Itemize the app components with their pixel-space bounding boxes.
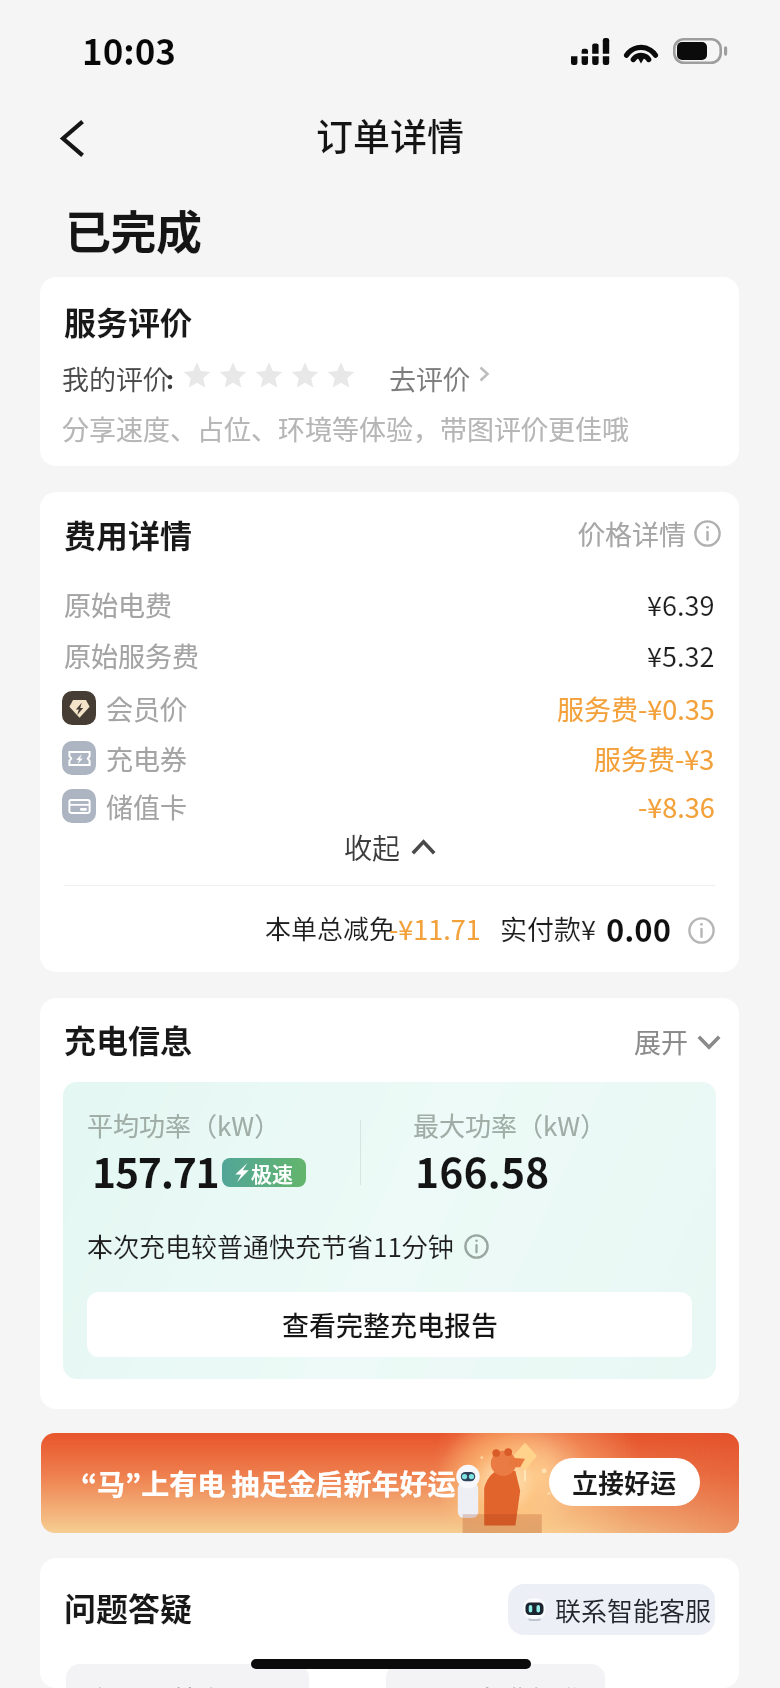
staticText: 0.00 (606, 906, 671, 951)
staticText: 充电券 (106, 739, 187, 778)
staticText: 服务费-¥3 (594, 739, 715, 778)
staticText: 分享速度、占位、环境等体验，带图评价更佳哦 (62, 409, 629, 448)
staticText: 去评价 (389, 359, 470, 398)
staticText: 要开了免费标准 (400, 1680, 583, 1688)
staticText: 166.58 (415, 1140, 550, 1199)
staticText: 我的评价 (62, 359, 170, 398)
button[interactable]: 查看完整充电报告 (87, 1292, 692, 1357)
staticText: -¥11.71 (389, 909, 481, 948)
staticText: 157.71 (92, 1140, 219, 1199)
staticText: 平均功率（kW） (87, 1106, 281, 1144)
staticText: 极速 (251, 1158, 293, 1187)
staticText: 收起 (344, 827, 401, 868)
staticText: 储值卡 (106, 787, 187, 826)
button[interactable]: 收起 (40, 825, 739, 869)
staticText: 本单总减免 (265, 909, 396, 947)
staticText: 知下引接多常 (95, 1680, 252, 1688)
staticText: 查看完整充电报告 (282, 1305, 498, 1344)
staticText: 联系智能客服 (555, 1591, 712, 1629)
staticText: 服务费-¥0.35 (557, 689, 715, 728)
button[interactable]: Back (34, 102, 106, 174)
staticText: 原始服务费 (64, 636, 199, 675)
staticText: 问题答疑 (64, 1584, 193, 1630)
staticText: 最大功率（kW） (413, 1106, 607, 1144)
staticText: 费用详情 (64, 511, 193, 557)
staticText: 原始电费 (64, 585, 172, 624)
staticText: “马”上有电 抽足金启新年好运 (81, 1463, 456, 1504)
staticText: -¥8.36 (638, 787, 715, 826)
staticText: 服务评价 (64, 298, 193, 344)
staticText: 展开 (634, 1022, 688, 1061)
button[interactable]: 知下引接多常 (66, 1664, 309, 1688)
staticText: ¥5.32 (647, 636, 715, 675)
button[interactable]: 展开 (634, 1022, 721, 1061)
button[interactable]: 我的评价 (58, 356, 538, 400)
staticText: 订单详情 (316, 108, 464, 162)
staticText: 价格详情 (578, 514, 686, 553)
staticText: 实付款¥ (500, 909, 596, 948)
staticText: 10:03 (82, 24, 176, 75)
staticText: 充电信息 (64, 1016, 193, 1062)
button[interactable]: 立接好运 (549, 1458, 700, 1506)
staticText: 立接好运 (572, 1463, 677, 1501)
button[interactable]: 联系智能客服 (508, 1584, 715, 1635)
button[interactable]: “马”上有电 抽足金启新年好运 (41, 1433, 739, 1533)
button[interactable]: 要开了免费标准 (386, 1664, 605, 1688)
staticText: 已完成 (65, 196, 202, 263)
staticText: ¥6.39 (647, 585, 715, 624)
button[interactable]: 价格详情 (578, 514, 721, 553)
staticText: 会员价 (106, 689, 187, 728)
staticText: 本次充电较普通快充节省11分钟 (87, 1227, 454, 1265)
